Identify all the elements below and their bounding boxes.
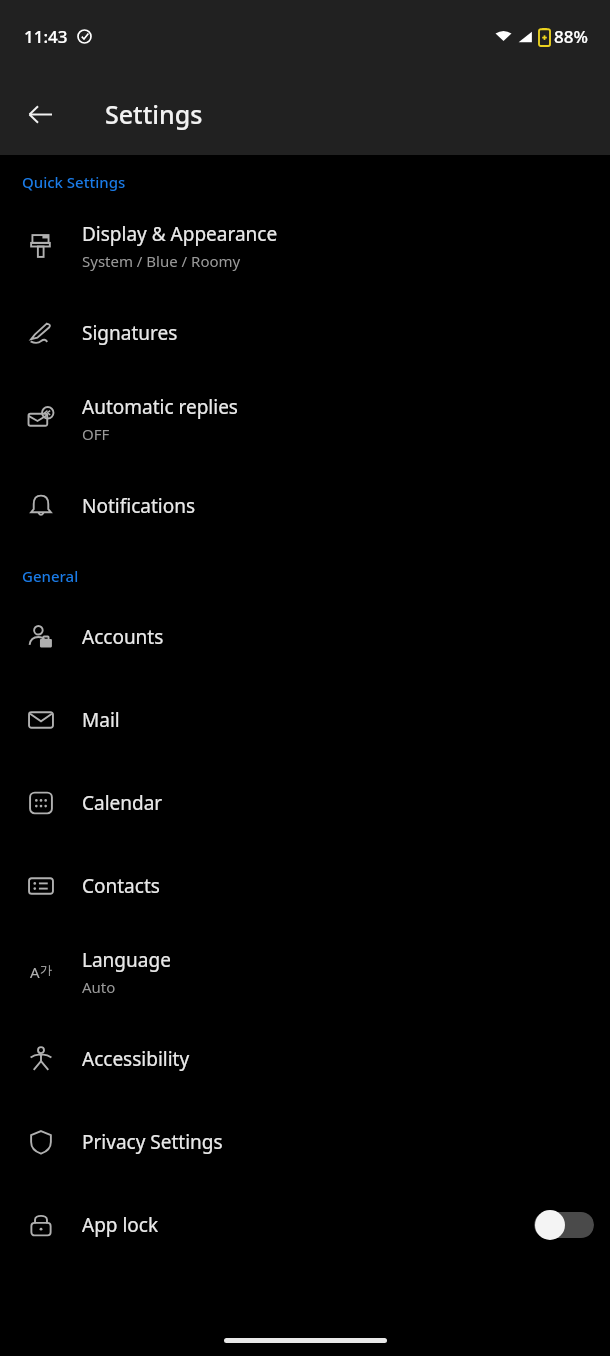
button[interactable]: App lock: [0, 1183, 610, 1266]
staticText: General: [22, 566, 79, 586]
button[interactable]: Signatures: [0, 291, 610, 374]
button[interactable]: Accounts: [0, 595, 610, 678]
button[interactable]: Back: [12, 86, 68, 142]
button[interactable]: Automatic replies: [0, 374, 610, 464]
button[interactable]: Contacts: [0, 844, 610, 927]
button[interactable]: App lock toggle: [534, 1208, 594, 1242]
staticText: 가: [40, 962, 52, 977]
staticText: App lock: [82, 1212, 159, 1238]
staticText: Automatic replies: [82, 394, 238, 420]
button[interactable]: Accessibility: [0, 1017, 610, 1100]
staticText: Calendar: [82, 790, 163, 816]
button[interactable]: Mail: [0, 678, 610, 761]
staticText: 11:43: [24, 25, 68, 48]
button[interactable]: Notifications: [0, 464, 610, 547]
staticText: System / Blue / Roomy: [82, 251, 241, 271]
staticText: 88%: [554, 25, 588, 48]
button[interactable]: A: [0, 927, 610, 1017]
staticText: Mail: [82, 707, 120, 733]
staticText: Signatures: [82, 320, 178, 346]
staticText: Notifications: [82, 493, 196, 519]
button[interactable]: Display & Appearance: [0, 201, 610, 291]
staticText: Auto: [82, 977, 116, 997]
staticText: Accessibility: [82, 1046, 190, 1072]
staticText: Privacy Settings: [82, 1129, 223, 1155]
staticText: Settings: [105, 97, 203, 131]
staticText: A: [30, 962, 40, 982]
staticText: Language: [82, 947, 171, 973]
button[interactable]: Privacy Settings: [0, 1100, 610, 1183]
staticText: Display & Appearance: [82, 221, 278, 247]
staticText: Contacts: [82, 873, 160, 899]
staticText: Accounts: [82, 624, 164, 650]
button[interactable]: Calendar: [0, 761, 610, 844]
staticText: OFF: [82, 424, 110, 444]
staticText: Quick Settings: [22, 172, 126, 192]
